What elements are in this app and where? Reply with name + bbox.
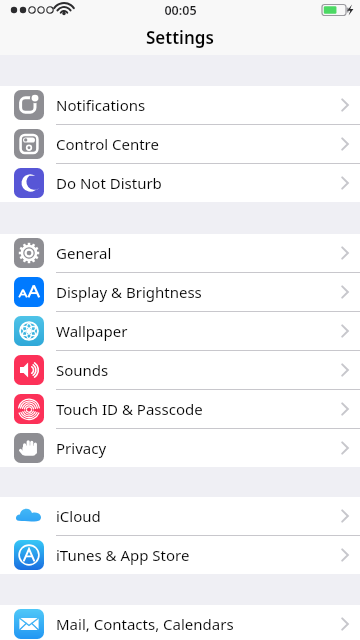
button[interactable]: Wallpaper: [0, 312, 360, 350]
staticText: Mail, Contacts, Calendars: [56, 614, 234, 634]
staticText: Settings: [146, 26, 214, 49]
staticText: Wallpaper: [56, 321, 128, 341]
staticText: Control Centre: [56, 134, 159, 154]
button[interactable]: Do Not Disturb: [0, 164, 360, 202]
button[interactable]: Display & Brightness: [0, 273, 360, 311]
staticText: General: [56, 243, 112, 263]
button[interactable]: Privacy: [0, 429, 360, 467]
staticText: iTunes & App Store: [56, 545, 190, 565]
button[interactable]: iTunes & App Store: [0, 536, 360, 574]
staticText: Notifications: [56, 95, 146, 115]
button[interactable]: iCloud: [0, 497, 360, 535]
button[interactable]: Sounds: [0, 351, 360, 389]
staticText: Display & Brightness: [56, 282, 202, 302]
staticText: Touch ID & Passcode: [56, 399, 203, 419]
staticText: Do Not Disturb: [56, 173, 162, 193]
staticText: 00:05: [164, 2, 197, 19]
staticText: Privacy: [56, 438, 107, 458]
button[interactable]: Notifications: [0, 86, 360, 124]
button[interactable]: General: [0, 234, 360, 272]
button[interactable]: Control Centre: [0, 125, 360, 163]
button[interactable]: Mail, Contacts, Calendars: [0, 605, 360, 640]
button[interactable]: Touch ID & Passcode: [0, 390, 360, 428]
staticText: iCloud: [56, 506, 101, 526]
staticText: Sounds: [56, 360, 109, 380]
